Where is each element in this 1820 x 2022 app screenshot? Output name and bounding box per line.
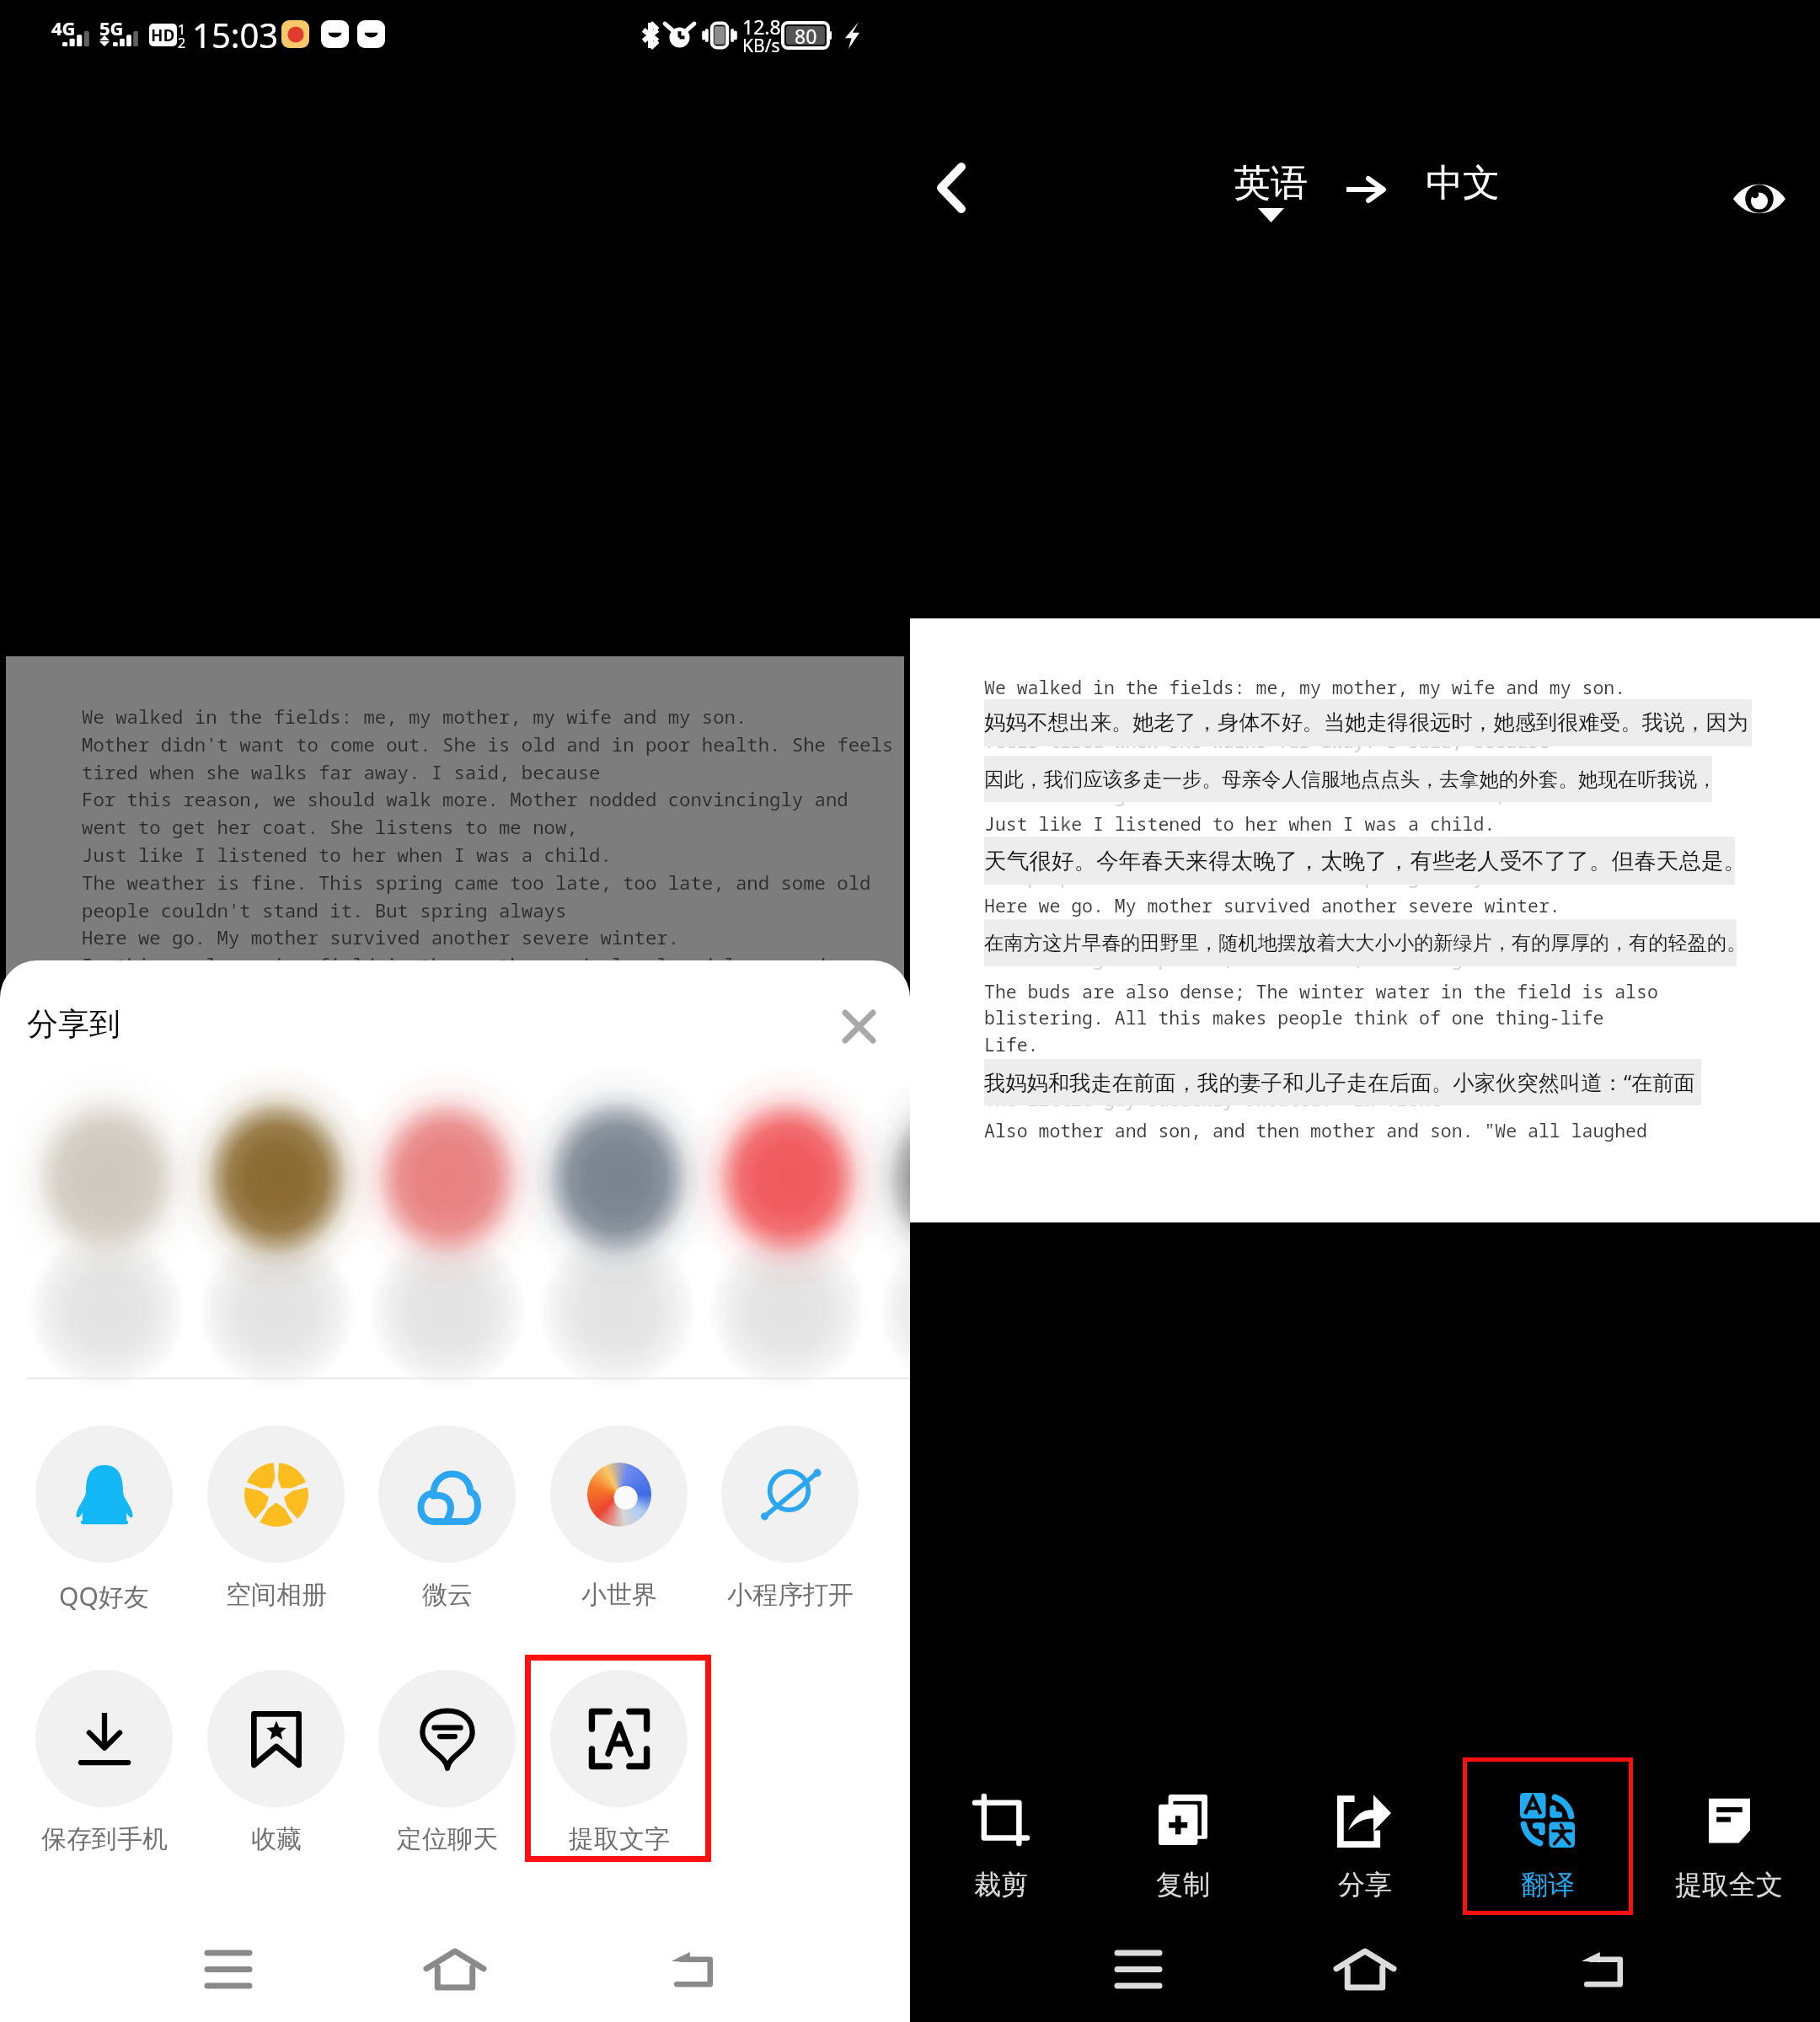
staticText: For this reason, we should walk more. Mo… <box>984 756 1680 780</box>
staticText: 因此，我们应该多走一步。母亲令人信服地点点头，去拿她的外套。她现在听我说， <box>984 767 1712 792</box>
staticText: 定位聊天 <box>397 1823 498 1855</box>
staticText: blistering. All this makes people think … <box>984 1005 1604 1030</box>
button[interactable]: 中文 <box>1426 160 1500 206</box>
button[interactable]: Recent contact 5 <box>701 1077 875 1355</box>
staticText: 提取文字 <box>569 1823 670 1855</box>
staticText: The buds are also dense; The winter wate… <box>984 979 1658 1003</box>
staticText: Also mother and son, and then mother and… <box>984 1118 1647 1142</box>
staticText: 空间相册 <box>226 1579 327 1611</box>
staticText: feels tired when she walks far away. I s… <box>984 729 1550 753</box>
staticText: 小世界 <box>581 1579 657 1611</box>
staticText: old people couldn't stand it. But spring… <box>984 864 1496 889</box>
staticText: My mother and I walked in front, my wife… <box>984 1060 1669 1084</box>
button[interactable]: Recent contact 1 <box>20 1077 194 1355</box>
button[interactable]: 提取全文 <box>1638 1757 1820 1915</box>
button[interactable]: 分享 <box>1274 1757 1456 1915</box>
staticText: 5G <box>99 15 124 40</box>
button[interactable]: Close <box>818 986 899 1067</box>
staticText: 英语 <box>1234 160 1308 206</box>
button[interactable]: Swap languages <box>1328 152 1402 227</box>
button[interactable]: Recents <box>169 1917 287 2022</box>
staticText: 复制 <box>1156 1868 1210 1902</box>
button[interactable]: 翻译 <box>1456 1757 1638 1915</box>
staticText: HD <box>151 24 175 46</box>
staticText: 天气很好。今年春天来得太晚了，太晚了，有些老人受不了了。但春天总是。 <box>984 847 1735 875</box>
button[interactable]: 定位聊天 <box>361 1670 532 1872</box>
staticText: 微云 <box>422 1579 473 1611</box>
button[interactable]: Back <box>905 142 998 234</box>
button[interactable]: QQ好友 <box>19 1426 189 1628</box>
staticText: Here we go. My mother survived another s… <box>984 893 1560 917</box>
staticText: tired when she walks far away. I said, b… <box>82 759 601 784</box>
button[interactable]: Home <box>396 1917 514 2022</box>
staticText: Just like I listened to her when I was a… <box>984 811 1496 836</box>
button[interactable]: Back <box>634 1917 752 2022</box>
staticText: 分享 <box>1338 1868 1392 1902</box>
staticText: people couldn't stand it. But spring alw… <box>82 897 567 923</box>
staticText: The weather is fine. This spring came to… <box>984 837 1702 862</box>
staticText: Life. <box>984 1032 1039 1056</box>
button[interactable]: 空间相册 <box>190 1426 361 1628</box>
staticText: 收藏 <box>251 1823 302 1855</box>
staticText: In this early spring field in the south,… <box>82 952 826 977</box>
button[interactable]: Recents <box>1079 1917 1197 2022</box>
staticText: QQ好友 <box>59 1579 149 1613</box>
button[interactable]: 裁剪 <box>910 1757 1092 1915</box>
staticText: went to get her coat. She listens to me … <box>82 814 578 839</box>
staticText: 12.8 <box>742 13 781 40</box>
button[interactable]: 提取文字 <box>533 1670 704 1872</box>
staticText: We walked in the fields: me, my mother, … <box>82 703 747 729</box>
staticText: KB/s <box>742 34 780 58</box>
button[interactable]: 小程序打开 <box>704 1426 875 1628</box>
staticText: 2 <box>178 34 186 52</box>
staticText: 15:03 <box>192 12 279 57</box>
button[interactable]: Recent contact 2 <box>190 1077 364 1355</box>
staticText: Just like I listened to her when I was a… <box>82 842 612 867</box>
staticText: 1 <box>178 20 186 39</box>
staticText: Mother didn't want to come out. She is o… <box>984 702 1702 726</box>
staticText: 裁剪 <box>974 1868 1028 1902</box>
staticText: Here we go. My mother survived another s… <box>82 924 680 949</box>
button[interactable]: 保存到手机 <box>19 1670 189 1872</box>
staticText: 妈妈不想出来。她老了，身体不好。当她走得很远时，她感到很难受。我说，因为 <box>984 709 1748 736</box>
button[interactable]: 收藏 <box>190 1670 361 1872</box>
button[interactable]: Back <box>1544 1917 1662 2022</box>
staticText: In this early spring field in the south,… <box>984 919 1702 944</box>
staticText: 保存到手机 <box>41 1823 168 1855</box>
button[interactable]: 微云 <box>361 1426 532 1628</box>
button[interactable]: Show original <box>1713 152 1806 245</box>
staticText: For this reason, we should walk more. Mo… <box>82 786 848 811</box>
staticText: Mother didn't want to come out. She is o… <box>82 731 894 757</box>
staticText: 分享到 <box>27 1004 120 1044</box>
staticText: The weather is fine. This spring came to… <box>82 869 871 895</box>
staticText: 提取全文 <box>1675 1868 1783 1902</box>
staticText: and went to get her coat. She listens to… <box>984 783 1507 807</box>
staticText: 我妈妈和我走在前面，我的妻子和儿子走在后面。小家伙突然叫道：“在前面 <box>984 1067 1695 1097</box>
staticText: 在南方这片早春的田野里，随机地摆放着大大小小的新绿片，有的厚厚的，有的轻盈的。 <box>984 931 1737 955</box>
staticText: small new green pieces, some thick, some… <box>984 946 1496 971</box>
button[interactable]: Recent contact 4 <box>531 1077 704 1355</box>
staticText: 翻译 <box>1521 1868 1575 1902</box>
button[interactable]: 英语 <box>1234 160 1308 221</box>
button[interactable]: Recent contact 3 <box>361 1077 534 1355</box>
staticText: The little guy suddenly shouted: "in fro… <box>984 1087 1441 1111</box>
staticText: 小程序打开 <box>727 1579 854 1611</box>
button[interactable]: 复制 <box>1092 1757 1274 1915</box>
staticText: 80 <box>795 23 817 48</box>
staticText: We walked in the fields: me, my mother, … <box>984 675 1626 699</box>
button[interactable]: 小世界 <box>533 1426 704 1628</box>
staticText: 4G <box>51 15 76 40</box>
button[interactable]: Home <box>1306 1917 1424 2022</box>
button[interactable]: Recent contact 6 <box>871 1077 910 1355</box>
